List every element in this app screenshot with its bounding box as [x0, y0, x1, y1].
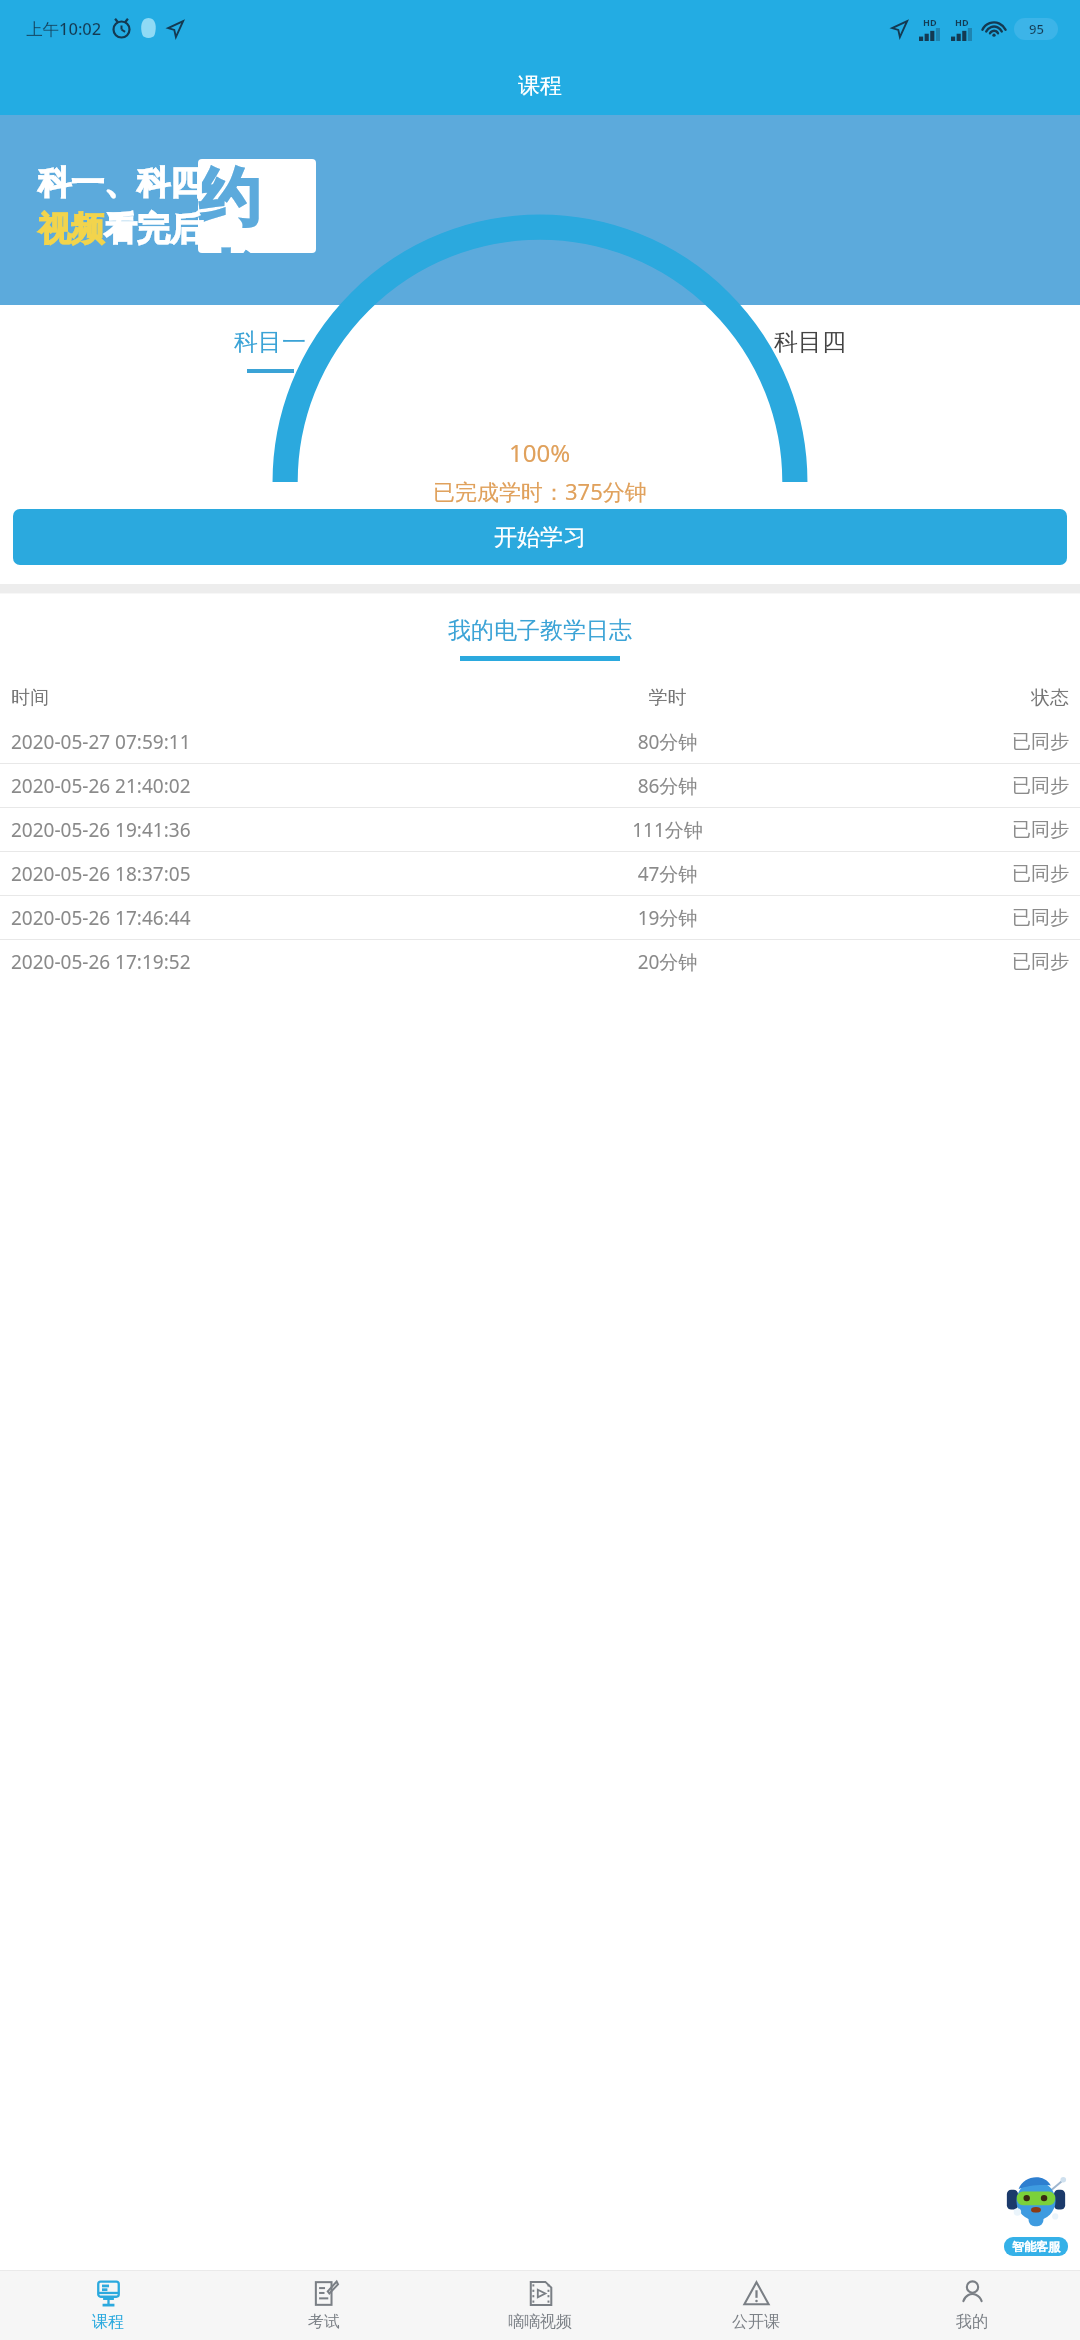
staticText: HD: [955, 16, 969, 28]
staticText: 视频: [38, 208, 104, 250]
staticText: 智能客服: [1012, 2239, 1060, 2254]
staticText: 2020-05-26 17:19:52: [11, 949, 509, 975]
staticText: 111分钟: [509, 817, 826, 843]
staticText: 公开课: [732, 2312, 780, 2332]
staticText: 19分钟: [509, 905, 826, 931]
button[interactable]: 课程: [0, 2271, 216, 2340]
button[interactable]: 科目四: [540, 305, 1080, 394]
staticText: 科目一: [234, 327, 306, 357]
staticText: 已同步: [826, 730, 1069, 754]
staticText: 科目四: [774, 327, 846, 357]
staticText: 已同步: [826, 950, 1069, 974]
staticText: 已同步: [826, 862, 1069, 886]
staticText: 95: [1029, 20, 1044, 38]
button[interactable]: 2020-05-26 21:40:02: [11, 764, 1069, 807]
staticText: 状态: [826, 686, 1069, 710]
button[interactable]: Banner 科一科四约考: [0, 115, 1080, 305]
staticText: 科一、科四: [38, 162, 203, 204]
staticText: 课程: [92, 2312, 124, 2332]
staticText: 2020-05-26 19:41:36: [11, 817, 509, 843]
staticText: 已同步: [826, 774, 1069, 798]
staticText: 我的: [956, 2312, 988, 2332]
staticText: 2020-05-26 18:37:05: [11, 861, 509, 887]
staticText: 考试: [308, 2312, 340, 2332]
button[interactable]: 开始学习: [13, 509, 1067, 565]
staticText: 20分钟: [509, 949, 826, 975]
staticText: 学时: [509, 686, 826, 710]
button[interactable]: 智能客服: [1004, 2173, 1068, 2256]
button[interactable]: 考试: [216, 2271, 432, 2340]
staticText: 2020-05-27 07:59:11: [11, 729, 509, 755]
staticText: 约考: [198, 159, 316, 253]
button[interactable]: 2020-05-26 17:46:44: [11, 896, 1069, 939]
staticText: 看完后: [104, 208, 203, 250]
staticText: 已同步: [826, 906, 1069, 930]
staticText: 我的电子教学日志: [448, 616, 632, 645]
button[interactable]: 科目一: [0, 305, 540, 394]
staticText: 100%: [509, 436, 571, 469]
button[interactable]: 2020-05-26 17:19:52: [11, 940, 1069, 983]
button[interactable]: 2020-05-26 19:41:36: [11, 808, 1069, 851]
staticText: 上午10:02: [26, 17, 102, 40]
staticText: 2020-05-26 17:46:44: [11, 905, 509, 931]
button[interactable]: 嘀嘀视频: [432, 2271, 648, 2340]
staticText: 时间: [11, 686, 509, 710]
staticText: 嘀嘀视频: [508, 2312, 572, 2332]
button[interactable]: 2020-05-26 18:37:05: [11, 852, 1069, 895]
button[interactable]: 我的: [864, 2271, 1080, 2340]
staticText: 47分钟: [509, 861, 826, 887]
button[interactable]: 公开课: [648, 2271, 864, 2340]
staticText: 80分钟: [509, 729, 826, 755]
staticText: 已同步: [826, 818, 1069, 842]
staticText: HD: [923, 16, 937, 28]
staticText: 已完成学时：375分钟: [433, 476, 647, 506]
staticText: 课程: [518, 72, 562, 100]
staticText: 86分钟: [509, 773, 826, 799]
staticText: 开始学习: [494, 523, 586, 552]
staticText: 2020-05-26 21:40:02: [11, 773, 509, 799]
button[interactable]: 2020-05-27 07:59:11: [11, 720, 1069, 763]
